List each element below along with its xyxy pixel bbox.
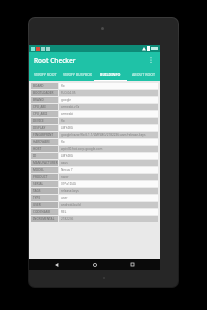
staticText: ABOUT ROOT — [132, 72, 155, 77]
staticText: BOOTLOADER — [33, 91, 54, 95]
button[interactable]: DISPLAY — [31, 125, 158, 131]
button[interactable]: CPU_ABI2 — [31, 111, 158, 117]
button[interactable]: BOOTLOADER — [31, 90, 158, 96]
staticText: 09*a1D4G — [61, 182, 77, 186]
button[interactable]: Back — [48, 259, 66, 270]
button[interactable]: HARDWARE — [31, 139, 158, 145]
button[interactable]: INCREMENTAL — [31, 216, 158, 222]
staticText: google/razor/flo:5.1.1/LMY48G/2182236:us… — [61, 133, 146, 137]
staticText: armeabi — [61, 112, 74, 116]
button[interactable]: DEVICE — [31, 118, 158, 124]
button[interactable]: HOST — [31, 146, 158, 152]
button[interactable]: ID — [31, 153, 158, 159]
button[interactable]: MODEL — [31, 167, 158, 173]
staticText: TAGS — [33, 189, 41, 193]
button[interactable]: CODENAME — [31, 209, 158, 215]
button[interactable]: BRAND — [31, 97, 158, 103]
staticText: DISPLAY — [33, 126, 46, 130]
staticText: Nexus 7 — [61, 168, 73, 172]
staticText: VERIFY ROOT — [34, 72, 57, 77]
staticText: MANUFACTURER — [33, 161, 58, 165]
staticText: 2182236 — [61, 217, 74, 221]
staticText: android-build — [61, 203, 81, 207]
staticText: REL — [61, 210, 67, 214]
staticText: DEVICE — [33, 119, 44, 123]
staticText: LMY48G — [61, 154, 73, 158]
staticText: wpiv30.hot.corp.google.com — [61, 147, 103, 151]
staticText: user — [61, 196, 68, 200]
button[interactable]: BOARD — [31, 83, 158, 89]
staticText: CPU_ABI2 — [33, 112, 48, 116]
staticText: MODEL — [33, 168, 44, 172]
staticText: CPU_ABI — [33, 105, 46, 109]
staticText: razor — [61, 175, 69, 179]
button[interactable]: FINGERPRINT — [31, 132, 158, 138]
staticText: FINGERPRINT — [33, 133, 54, 137]
button[interactable]: USER — [31, 202, 158, 208]
staticText: flo — [61, 119, 65, 123]
staticText: release-keys — [61, 189, 79, 193]
button[interactable]: Recent apps — [123, 259, 141, 270]
staticText: ID — [33, 154, 37, 158]
button[interactable]: TYPE — [31, 195, 158, 201]
staticText: asus — [61, 161, 68, 165]
staticText: flo — [61, 140, 65, 144]
staticText: VERIFY BUSYBOX — [63, 72, 93, 77]
staticText: LMY48G — [61, 126, 73, 130]
staticText: TYPE — [33, 196, 41, 200]
staticText: BRAND — [33, 98, 44, 102]
button[interactable]: BUILDINFO — [94, 68, 127, 81]
button[interactable]: CPU_ABI — [31, 104, 158, 110]
staticText: HOST — [33, 147, 42, 151]
button[interactable]: PRODUCT — [31, 174, 158, 180]
staticText: USER — [33, 203, 41, 207]
button[interactable]: VERIFY ROOT — [29, 68, 61, 81]
staticText: flo — [61, 84, 65, 88]
button[interactable]: TAGS — [31, 188, 158, 194]
staticText: BUILDINFO — [100, 72, 121, 77]
staticText: INCREMENTAL — [33, 217, 55, 221]
button[interactable]: Home — [86, 259, 104, 270]
staticText: FLO-04.05 — [61, 91, 76, 95]
button[interactable]: SERIAL — [31, 181, 158, 187]
staticText: HARDWARE — [33, 140, 51, 144]
button[interactable]: ABOUT ROOT — [127, 68, 160, 81]
staticText: armeabi-v7a — [61, 105, 80, 109]
button[interactable]: VERIFY BUSYBOX — [61, 68, 94, 81]
staticText: BOARD — [33, 84, 44, 88]
staticText: Root Checker — [34, 56, 76, 65]
staticText: CODENAME — [33, 210, 51, 214]
staticText: SERIAL — [33, 182, 44, 186]
staticText: google — [61, 98, 72, 102]
button[interactable]: MANUFACTURER — [31, 160, 158, 166]
button[interactable]: More options — [145, 54, 157, 66]
staticText: PRODUCT — [33, 175, 48, 179]
